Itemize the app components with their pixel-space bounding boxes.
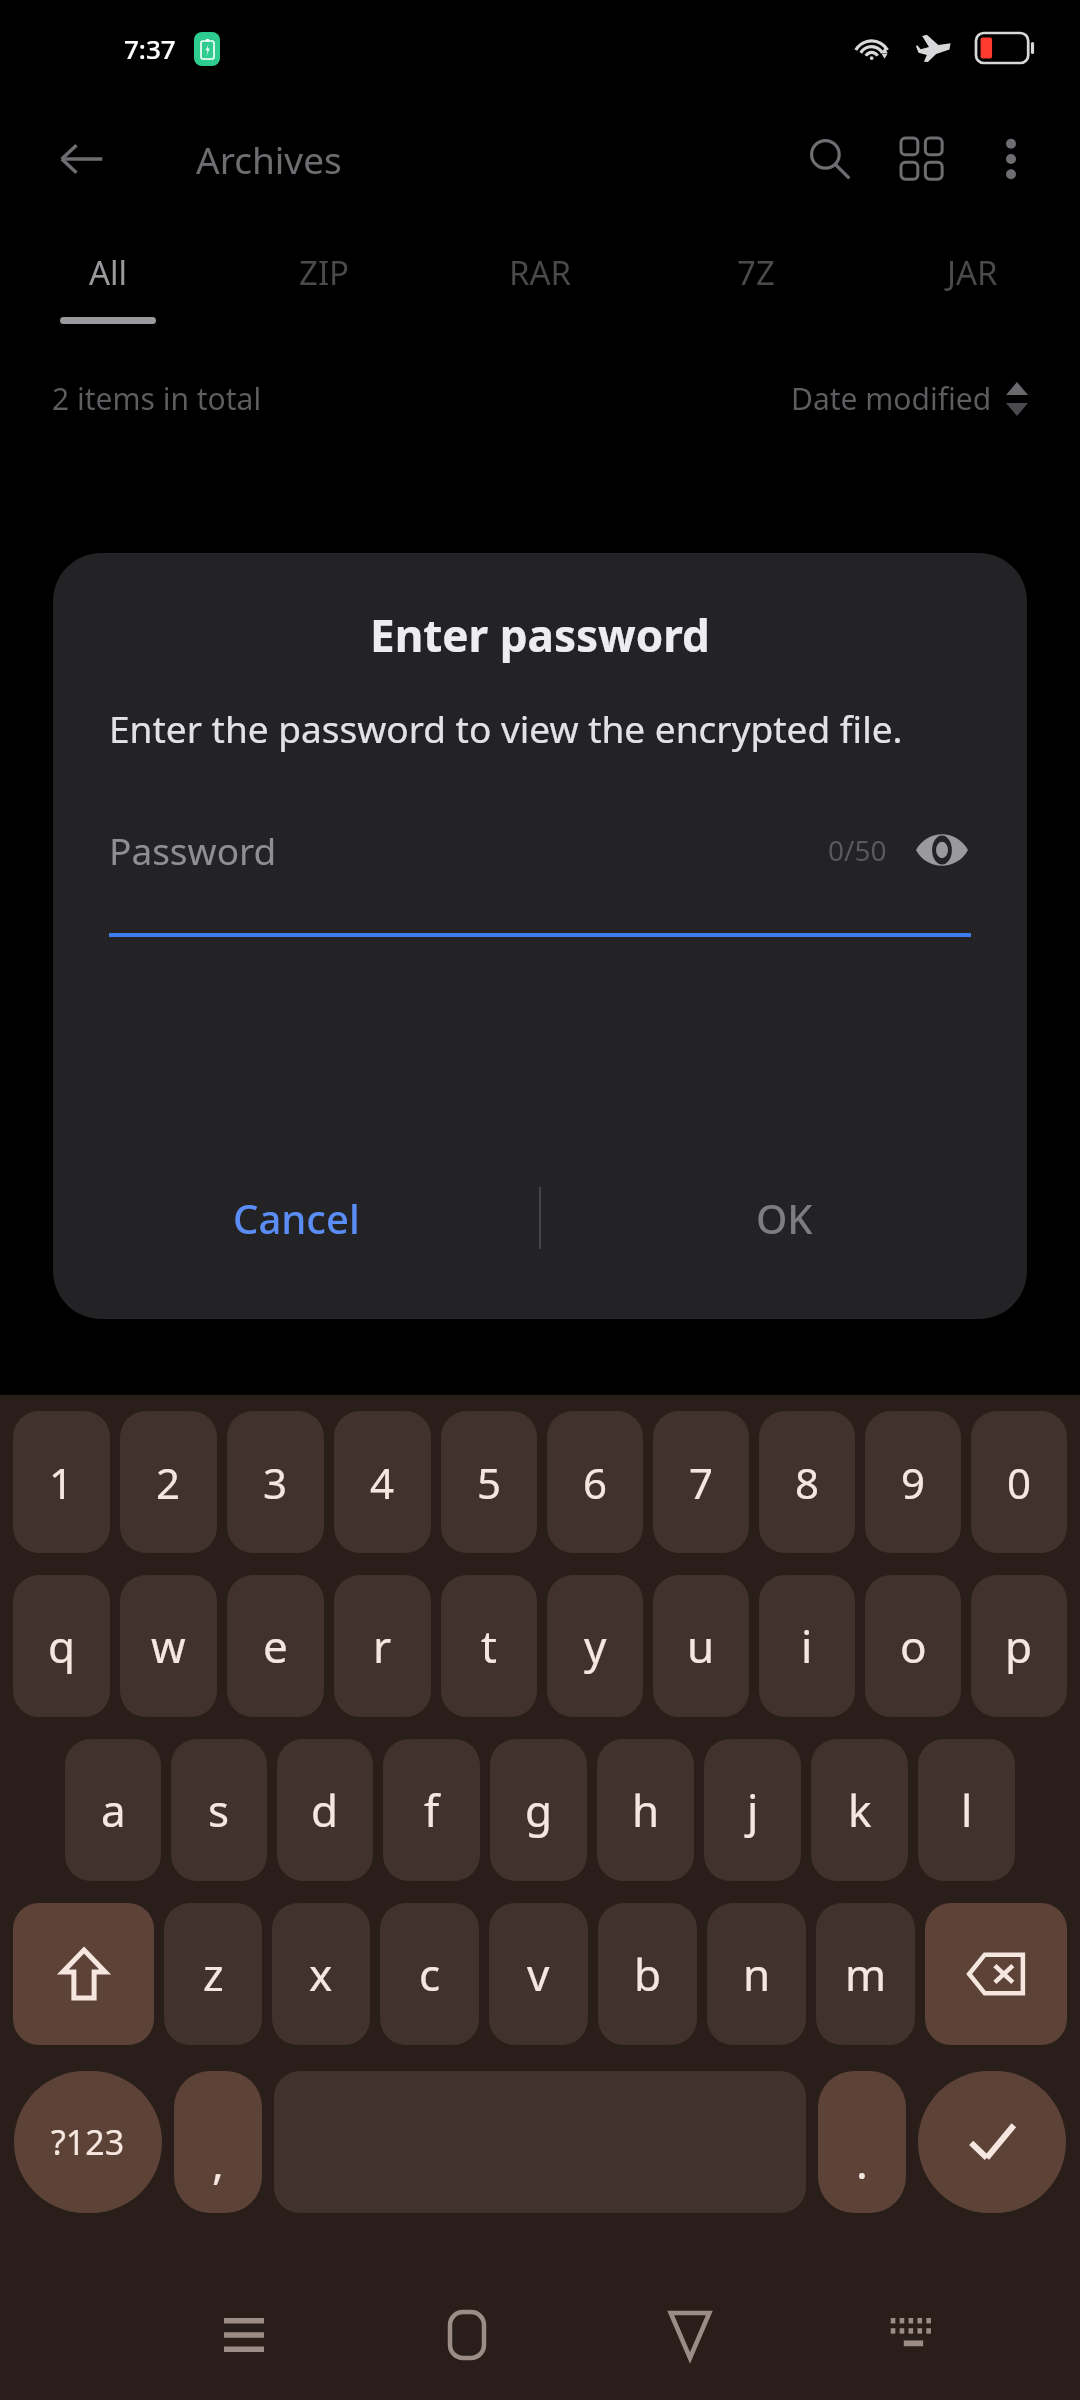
button[interactable]: Back	[38, 115, 126, 203]
button[interactable]: .	[818, 2071, 906, 2213]
staticText: e	[263, 1616, 288, 1676]
button[interactable]: p	[971, 1575, 1067, 1717]
button[interactable]: n	[707, 1903, 806, 2045]
staticText: JAR	[947, 250, 998, 295]
staticText: t	[481, 1616, 497, 1676]
button[interactable]: i	[759, 1575, 855, 1717]
staticText: q	[48, 1616, 76, 1676]
button[interactable]: 9	[865, 1411, 961, 1553]
button[interactable]: x	[272, 1903, 370, 2045]
staticText: f	[424, 1780, 440, 1840]
staticText: Password	[109, 825, 277, 875]
button[interactable]: Date modified	[791, 378, 1028, 419]
button[interactable]: q	[13, 1575, 110, 1717]
button[interactable]: Grid view	[876, 113, 968, 205]
button[interactable]: Shift	[13, 1903, 154, 2045]
staticText: 0	[1007, 1454, 1032, 1511]
staticText: a	[101, 1780, 126, 1840]
staticText: ?123	[51, 2119, 125, 2165]
button[interactable]: u	[653, 1575, 749, 1717]
button[interactable]: b	[598, 1903, 697, 2045]
staticText: n	[743, 1944, 771, 2004]
button[interactable]: 7	[653, 1411, 749, 1553]
staticText: h	[632, 1780, 660, 1840]
button[interactable]: e	[227, 1575, 324, 1717]
staticText: u	[687, 1616, 715, 1676]
button[interactable]: Password	[109, 807, 971, 937]
staticText: Cancel	[233, 1191, 360, 1245]
staticText: Date modified	[791, 378, 992, 419]
button[interactable]: y	[547, 1575, 643, 1717]
staticText: d	[311, 1780, 339, 1840]
button[interactable]: ?123	[14, 2071, 162, 2213]
button[interactable]: ,	[174, 2071, 262, 2213]
staticText: o	[900, 1616, 927, 1676]
button[interactable]: Keyboard	[801, 2270, 1024, 2400]
button[interactable]: 2	[120, 1411, 217, 1553]
button[interactable]: w	[120, 1575, 217, 1717]
button[interactable]: 7Z	[648, 222, 864, 346]
button[interactable]: m	[816, 1903, 915, 2045]
staticText: 8	[795, 1454, 820, 1511]
staticText: ZIP	[299, 250, 350, 295]
staticText: Archives	[196, 134, 342, 184]
button[interactable]: k	[811, 1739, 908, 1881]
staticText: Enter password	[370, 605, 710, 665]
button[interactable]: o	[865, 1575, 961, 1717]
button[interactable]: 3	[227, 1411, 324, 1553]
staticText: 7	[689, 1454, 714, 1511]
staticText: k	[848, 1780, 872, 1840]
button[interactable]: Back	[578, 2270, 801, 2400]
button[interactable]: j	[704, 1739, 801, 1881]
button[interactable]: 1	[13, 1411, 110, 1553]
button[interactable]: More options	[968, 116, 1054, 202]
button[interactable]: 6	[547, 1411, 643, 1553]
button[interactable]: h	[597, 1739, 694, 1881]
button[interactable]: z	[164, 1903, 262, 2045]
staticText: Enter the password to view the encrypted…	[109, 703, 903, 753]
button[interactable]: JAR	[864, 222, 1080, 346]
staticText: RAR	[509, 250, 572, 295]
button[interactable]: l	[918, 1739, 1015, 1881]
button[interactable]: c	[380, 1903, 479, 2045]
staticText: m	[845, 1944, 887, 2004]
button[interactable]: f	[383, 1739, 480, 1881]
staticText: 5	[477, 1454, 502, 1511]
staticText: y	[584, 1616, 607, 1676]
staticText: i	[801, 1616, 813, 1676]
button[interactable]: v	[489, 1903, 588, 2045]
staticText: j	[747, 1780, 759, 1840]
staticText: 6	[583, 1454, 608, 1511]
button[interactable]: a	[65, 1739, 161, 1881]
button[interactable]: 4	[334, 1411, 431, 1553]
button[interactable]: ZIP	[216, 222, 432, 346]
staticText: OK	[756, 1191, 813, 1245]
staticText: 7:37	[124, 31, 176, 66]
staticText: p	[1005, 1616, 1033, 1676]
button[interactable]: Backspace	[925, 1903, 1067, 2045]
button[interactable]: Enter	[918, 2071, 1066, 2213]
staticText: s	[208, 1780, 230, 1840]
button[interactable]: t	[441, 1575, 537, 1717]
staticText: 0/50	[828, 831, 887, 869]
button[interactable]: Menu	[133, 2270, 355, 2400]
button[interactable]: g	[490, 1739, 587, 1881]
button[interactable]: 5	[441, 1411, 537, 1553]
button[interactable]: All	[0, 222, 216, 346]
button[interactable]: r	[334, 1575, 431, 1717]
button[interactable]: s	[171, 1739, 267, 1881]
button[interactable]: RAR	[432, 222, 648, 346]
button[interactable]: d	[277, 1739, 373, 1881]
staticText: 4	[370, 1454, 395, 1511]
button[interactable]: Show password	[913, 821, 971, 879]
staticText: g	[525, 1780, 553, 1840]
staticText: 3	[263, 1454, 288, 1511]
button[interactable]: OK	[541, 1143, 1027, 1293]
button[interactable]: 8	[759, 1411, 855, 1553]
button[interactable]: Cancel	[53, 1143, 539, 1293]
staticText: 9	[901, 1454, 926, 1511]
button[interactable]: Home	[355, 2270, 578, 2400]
button[interactable]: Search	[784, 113, 876, 205]
button[interactable]: 0	[971, 1411, 1067, 1553]
